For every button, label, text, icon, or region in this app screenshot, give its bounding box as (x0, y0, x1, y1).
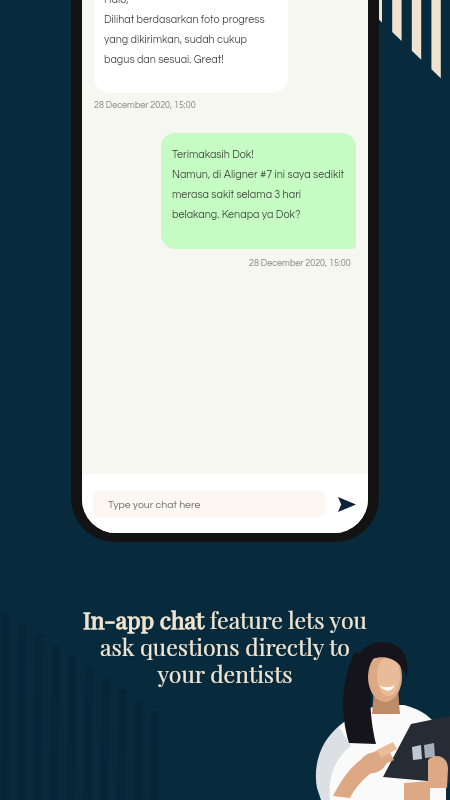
staticText: 28 December 2020, 15:00 (249, 259, 351, 268)
button[interactable]: Send (325, 488, 368, 520)
button[interactable]: Type your chat here (93, 491, 325, 517)
staticText: Terimakasih Dok! Namun, di Aligner #7 in… (172, 149, 345, 220)
staticText: In-app chat feature lets you ask questio… (75, 604, 375, 689)
staticText: Halo, Dilihat berdasarkan foto progress … (104, 0, 265, 65)
staticText: Type your chat here (108, 499, 201, 510)
staticText: 28 December 2020, 15:00 (94, 101, 196, 110)
